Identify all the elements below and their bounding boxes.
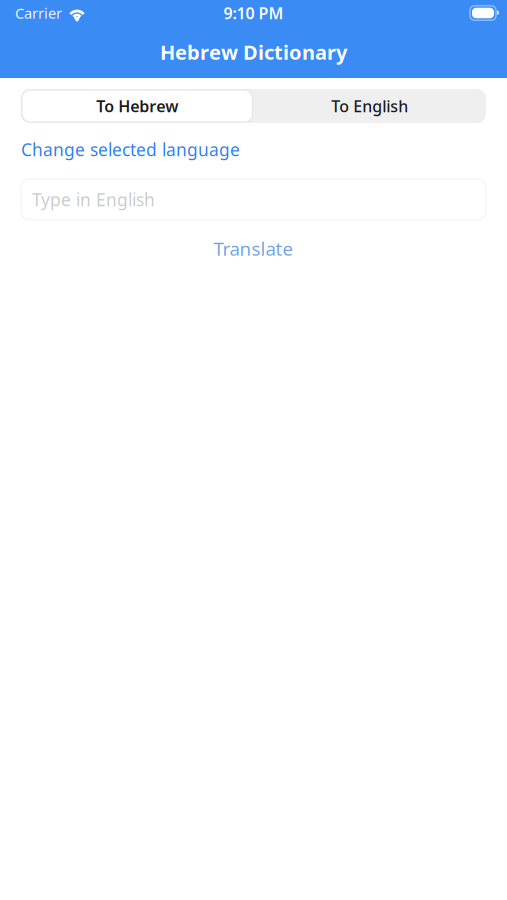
staticText: Type in English (32, 188, 155, 211)
staticText: 9:10 PM (223, 2, 283, 24)
button[interactable]: Type in English (21, 179, 486, 220)
staticText: To English (331, 95, 408, 117)
button[interactable]: To English (253, 89, 486, 123)
button[interactable]: Translate (21, 236, 486, 261)
staticText: Carrier (15, 3, 62, 23)
button[interactable]: Change selected language (21, 138, 240, 161)
staticText: Translate (213, 236, 293, 261)
staticText: Hebrew Dictionary (160, 39, 347, 65)
button[interactable]: To Hebrew (21, 89, 253, 123)
staticText: To Hebrew (96, 95, 178, 117)
staticText: Change selected language (21, 138, 240, 161)
